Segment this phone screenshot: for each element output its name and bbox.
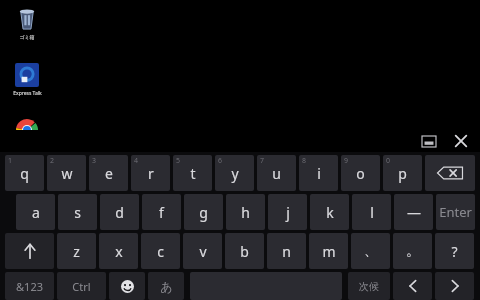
staticText: o [356,164,365,183]
button[interactable]: f [142,194,181,230]
button[interactable]: 4 [131,155,170,191]
button[interactable]: 8 [299,155,338,191]
button[interactable]: m [309,233,348,269]
staticText: 6 [218,156,223,166]
button[interactable]: Emoji [109,272,145,300]
button[interactable]: a [16,194,55,230]
button[interactable]: Previous [393,272,432,300]
staticText: m [322,242,336,261]
staticText: c [157,242,164,261]
staticText: 、 [364,242,378,260]
staticText: h [241,203,250,222]
staticText: k [326,203,334,222]
staticText: 4 [134,156,139,166]
staticText: w [61,164,73,183]
staticText: t [190,164,196,183]
staticText: ゴミ箱 [19,34,35,40]
staticText: e [105,164,113,183]
staticText: 8 [302,156,307,166]
staticText: r [148,164,154,183]
button[interactable]: n [267,233,306,269]
button[interactable]: s [58,194,97,230]
button[interactable]: Close [450,130,472,152]
staticText: 5 [176,156,181,166]
button[interactable]: 、 [351,233,390,269]
button[interactable]: — [394,194,433,230]
button[interactable]: x [99,233,138,269]
button[interactable]: Ctrl [57,272,106,300]
button[interactable]: Next [435,272,474,300]
staticText: n [282,242,291,261]
button[interactable]: Enter [436,194,475,230]
staticText: Ctrl [72,279,91,294]
button[interactable]: 9 [341,155,380,191]
staticText: ? [451,242,458,261]
staticText: s [74,203,81,222]
button[interactable]: Shift [5,233,54,269]
button[interactable]: &123 [5,272,54,300]
staticText: 0 [386,156,391,166]
button[interactable]: 次候 [348,272,390,300]
button[interactable]: 2 [47,155,86,191]
button[interactable]: あ [148,272,184,300]
button[interactable]: ? [435,233,474,269]
button[interactable]: l [352,194,391,230]
staticText: g [199,203,208,222]
staticText: z [73,242,80,261]
staticText: a [32,203,40,222]
staticText: Enter [439,203,472,221]
button[interactable]: 6 [215,155,254,191]
staticText: j [286,203,290,222]
staticText: i [317,164,321,183]
button[interactable]: k [310,194,349,230]
button[interactable]: 5 [173,155,212,191]
staticText: b [240,242,249,261]
button[interactable]: h [226,194,265,230]
staticText: 9 [344,156,349,166]
staticText: 2 [50,156,55,166]
staticText: u [272,164,281,183]
button[interactable]: Express Talk [2,58,52,97]
staticText: 1 [8,156,13,166]
staticText: d [115,203,124,222]
staticText: — [407,203,421,222]
staticText: q [20,164,29,183]
staticText: Express Talk [13,90,42,97]
button[interactable]: Minimize [418,130,440,152]
button[interactable]: Google Chrome [2,113,52,152]
staticText: 次候 [359,280,379,293]
staticText: x [115,242,123,261]
button[interactable]: Backspace [425,155,475,191]
button[interactable]: Recycle Bin [2,2,52,40]
staticText: &123 [16,279,43,294]
button[interactable]: 。 [393,233,432,269]
staticText: y [231,164,239,183]
button[interactable]: z [57,233,96,269]
button[interactable]: d [100,194,139,230]
button[interactable]: 1 [5,155,44,191]
button[interactable]: c [141,233,180,269]
button[interactable]: v [183,233,222,269]
staticText: 3 [92,156,97,166]
staticText: f [159,203,164,222]
button[interactable]: j [268,194,307,230]
button[interactable]: 7 [257,155,296,191]
staticText: v [199,242,207,261]
button[interactable]: 0 [383,155,422,191]
staticText: 。 [406,242,420,260]
staticText: あ [160,279,173,294]
staticText: l [370,203,374,222]
button[interactable]: g [184,194,223,230]
staticText: 7 [260,156,265,166]
staticText: p [398,164,407,183]
button[interactable]: b [225,233,264,269]
button[interactable]: 3 [89,155,128,191]
